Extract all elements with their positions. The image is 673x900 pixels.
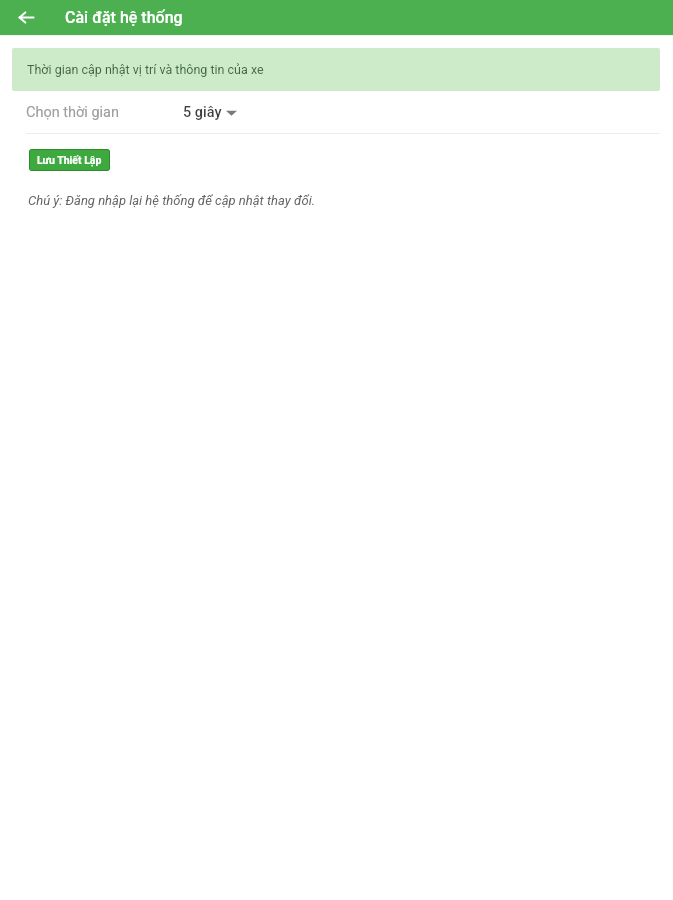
button[interactable]: Lưu Thiết Lập <box>29 149 110 171</box>
button[interactable]: 5 giây <box>183 104 237 121</box>
staticText: Thời gian cập nhật vị trí và thông tin c… <box>27 62 264 77</box>
staticText: 5 giây <box>183 104 222 121</box>
staticText: Chú ý: Đăng nhập lại hệ thống để cập nhậ… <box>28 193 316 208</box>
button[interactable]: Back <box>9 0 44 35</box>
staticText: Cài đặt hệ thống <box>65 8 183 27</box>
staticText: Chọn thời gian <box>26 104 120 121</box>
staticText: Lưu Thiết Lập <box>37 154 102 166</box>
